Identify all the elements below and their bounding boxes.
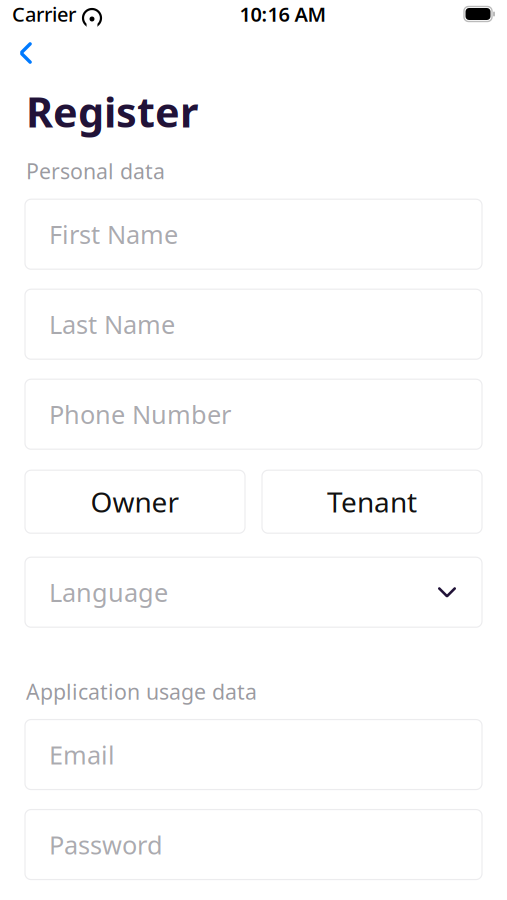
staticText: Personal data xyxy=(26,157,165,185)
staticText: Language xyxy=(49,575,168,609)
staticText: Register xyxy=(26,84,198,139)
staticText: First Name xyxy=(49,217,178,251)
staticText: Last Name xyxy=(49,307,175,341)
staticText: Owner xyxy=(90,483,179,520)
staticText: Tenant xyxy=(327,483,417,520)
staticText: Password xyxy=(49,828,163,861)
button[interactable]: Tenant xyxy=(262,470,482,533)
button[interactable]: Back xyxy=(6,36,46,70)
button[interactable]: Last Name xyxy=(25,289,482,359)
button[interactable]: First Name xyxy=(25,199,482,269)
staticText: Email xyxy=(49,738,115,771)
button[interactable]: Language xyxy=(25,557,482,627)
button[interactable]: Email xyxy=(25,719,482,789)
button[interactable]: Phone Number xyxy=(25,379,482,449)
button[interactable]: Owner xyxy=(25,470,245,533)
staticText: Carrier xyxy=(12,1,76,27)
staticText: Application usage data xyxy=(26,677,257,705)
staticText: 10:16 AM xyxy=(239,1,326,27)
button[interactable]: Password xyxy=(25,809,482,879)
staticText: Phone Number xyxy=(49,397,231,431)
